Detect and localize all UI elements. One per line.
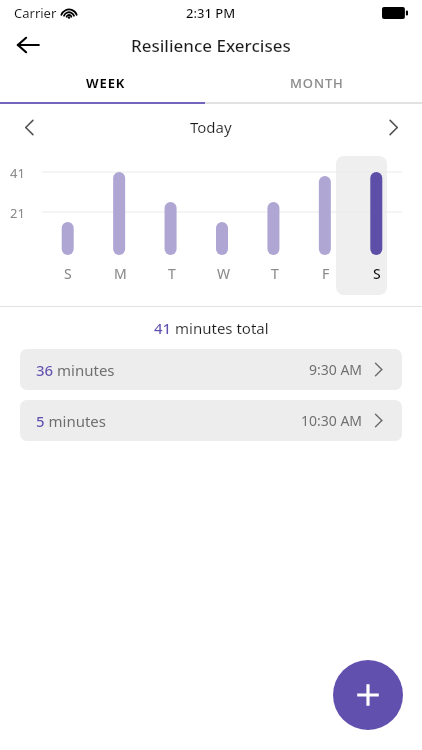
button[interactable]: 5 minutes xyxy=(20,400,402,441)
staticText: S xyxy=(64,264,72,283)
staticText: Carrier xyxy=(14,4,57,22)
staticText: M xyxy=(114,264,127,283)
staticText: 2:31 PM xyxy=(186,4,236,22)
button[interactable]: Add xyxy=(333,660,403,730)
staticText: S xyxy=(373,264,381,283)
button[interactable]: 36 minutes xyxy=(20,349,402,390)
staticText: F xyxy=(322,264,330,283)
button[interactable]: MONTH xyxy=(211,64,422,102)
staticText: W xyxy=(217,264,231,283)
button[interactable]: Back xyxy=(8,26,48,64)
staticText: 36 minutes xyxy=(36,360,115,380)
staticText: 41 minutes total xyxy=(154,318,269,338)
staticText: 10:30 AM xyxy=(301,411,363,430)
staticText: 41 xyxy=(10,164,25,182)
button[interactable]: Previous xyxy=(10,108,48,146)
staticText: MONTH xyxy=(290,74,344,92)
staticText: WEEK xyxy=(86,74,126,92)
staticText: 9:30 AM xyxy=(309,360,363,379)
staticText: T xyxy=(168,264,176,283)
staticText: T xyxy=(271,264,279,283)
staticText: Resilience Exercises xyxy=(131,34,291,57)
button[interactable] xyxy=(336,156,387,295)
button[interactable]: Next xyxy=(374,108,412,146)
staticText: 5 minutes xyxy=(36,411,106,431)
staticText: Today xyxy=(190,117,232,137)
button[interactable]: WEEK xyxy=(0,64,211,102)
staticText: 21 xyxy=(10,204,25,222)
